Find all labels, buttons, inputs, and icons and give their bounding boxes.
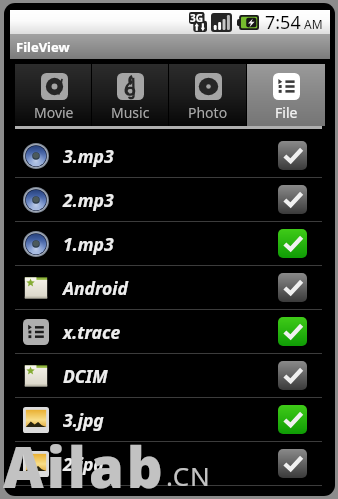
staticText: FileView: [16, 38, 70, 56]
button[interactable]: Selected: [278, 405, 307, 434]
staticText: DCIM: [63, 364, 278, 388]
button[interactable]: 3.jpg: [15, 398, 322, 441]
button[interactable]: Selected: [278, 317, 307, 346]
staticText: 3G: [190, 11, 203, 25]
button[interactable]: Android: [15, 266, 322, 309]
staticText: x.trace: [63, 320, 278, 344]
button[interactable]: DCIM: [15, 354, 322, 397]
staticText: 1.mp3: [63, 232, 278, 256]
staticText: Movie: [34, 103, 74, 122]
button[interactable]: Not selected: [278, 273, 307, 302]
button[interactable]: Selected: [278, 229, 307, 258]
staticText: 7:54: [265, 10, 301, 34]
button[interactable]: x.trace: [15, 310, 322, 353]
button[interactable]: Photo: [169, 64, 247, 126]
button[interactable]: Not selected: [278, 185, 307, 214]
button[interactable]: 2.mp3: [15, 178, 322, 221]
staticText: Android: [63, 276, 278, 300]
button[interactable]: Not selected: [278, 361, 307, 390]
staticText: File: [275, 103, 298, 122]
staticText: 3.mp3: [63, 144, 278, 168]
button[interactable]: Not selected: [278, 141, 307, 170]
staticText: Photo: [188, 103, 228, 122]
staticText: Ailab: [3, 428, 166, 499]
button[interactable]: 1.mp3: [15, 222, 322, 265]
staticText: Music: [111, 103, 150, 122]
staticText: 2.jpg: [63, 452, 278, 476]
button[interactable]: 2.jpg: [15, 442, 322, 485]
button[interactable]: 3.mp3: [15, 129, 322, 177]
staticText: 2.mp3: [63, 188, 278, 212]
button[interactable]: Movie: [15, 64, 92, 126]
staticText: 3.jpg: [63, 408, 278, 432]
staticText: .CN: [166, 458, 211, 493]
staticText: AM: [304, 16, 323, 32]
button[interactable]: Music: [92, 64, 169, 126]
button[interactable]: Not selected: [278, 449, 307, 478]
button[interactable]: File: [247, 64, 325, 126]
